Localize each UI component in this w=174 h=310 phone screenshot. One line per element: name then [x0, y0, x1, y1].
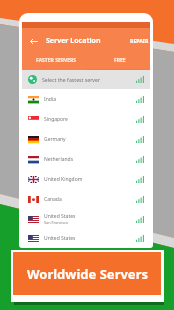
- staticText: India: [44, 96, 56, 103]
- staticText: Worldwide Servers: [27, 265, 148, 283]
- button[interactable]: Singapore: [22, 109, 150, 129]
- staticText: San Francisco: [44, 220, 69, 225]
- button[interactable]: Select the fastest server: [22, 69, 150, 89]
- button[interactable]: Canada: [22, 189, 150, 209]
- staticText: Singapore: [44, 116, 68, 123]
- button[interactable]: Germany: [22, 129, 150, 149]
- staticText: Server Location: [46, 36, 101, 46]
- staticText: REPAIR: [130, 37, 149, 44]
- button[interactable]: India: [22, 89, 150, 109]
- button[interactable]: FASTER SERVERS: [22, 55, 86, 69]
- button[interactable]: FREE: [86, 55, 150, 69]
- staticText: FASTER SERVERS: [36, 57, 77, 64]
- staticText: Netherlands: [44, 156, 74, 163]
- button[interactable]: REPAIR: [130, 37, 149, 44]
- button[interactable]: Netherlands: [22, 149, 150, 169]
- staticText: Select the fastest server: [42, 76, 101, 83]
- staticText: United Kingdom: [44, 176, 83, 183]
- button[interactable]: United States: [22, 209, 150, 229]
- staticText: Canada: [44, 196, 62, 203]
- staticText: United States: [44, 213, 76, 220]
- staticText: FREE: [114, 57, 126, 64]
- button[interactable]: Back: [29, 37, 39, 46]
- button[interactable]: Worldwide Servers: [13, 252, 161, 295]
- button[interactable]: United States: [22, 229, 150, 248]
- staticText: United States: [44, 235, 76, 242]
- button[interactable]: United Kingdom: [22, 169, 150, 189]
- staticText: Germany: [44, 136, 66, 143]
